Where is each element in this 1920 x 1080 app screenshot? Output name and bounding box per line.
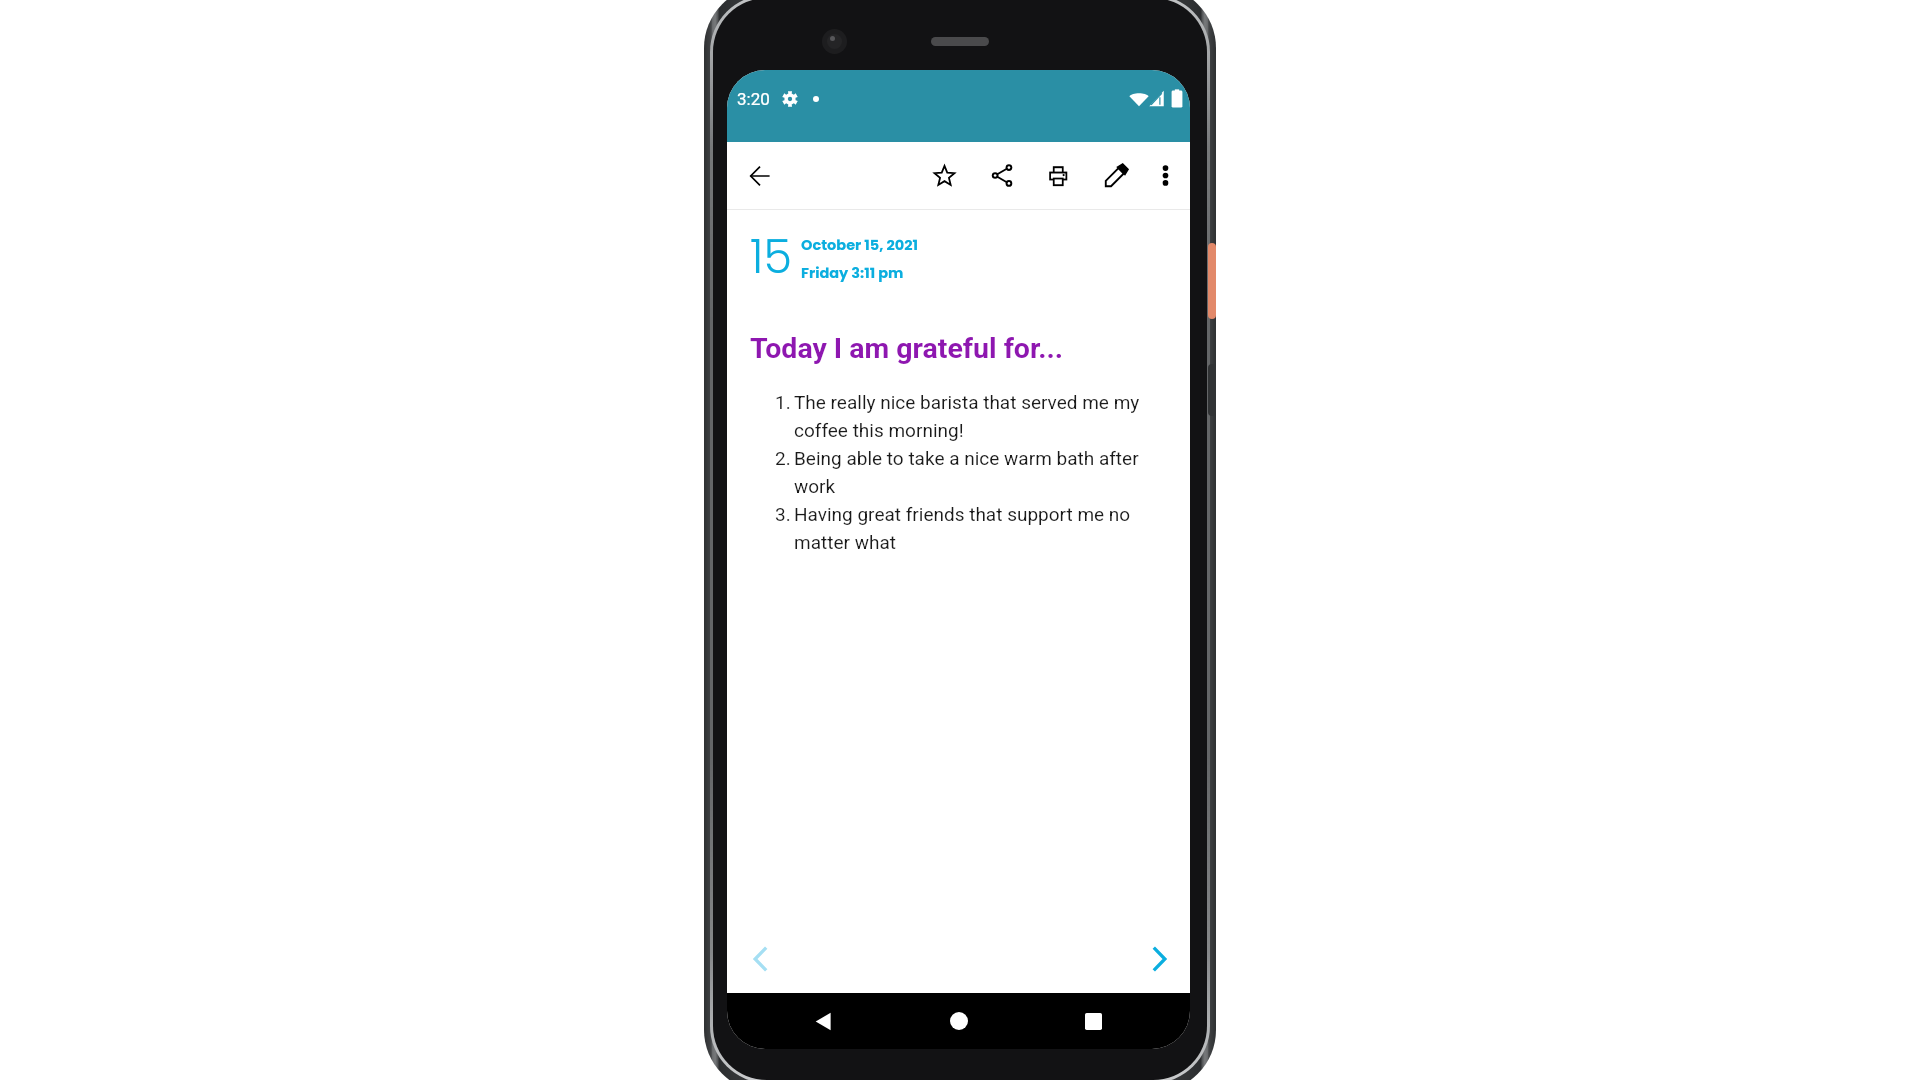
button[interactable]: Back — [799, 993, 847, 1049]
staticText: Being able to take a nice warm bath afte… — [794, 443, 1149, 499]
staticText: October 15, 2021 — [801, 235, 918, 255]
button[interactable]: Favorite — [920, 142, 968, 209]
staticText: 15 — [750, 225, 792, 289]
button[interactable]: Back — [736, 142, 784, 209]
button[interactable]: Recent apps — [1069, 993, 1117, 1049]
button[interactable]: More options — [1141, 142, 1189, 209]
staticText: Having great friends that support me no … — [794, 499, 1149, 555]
button[interactable]: Next entry — [1137, 937, 1181, 981]
staticText: 1. — [775, 387, 794, 415]
staticText: Today I am grateful for... — [750, 332, 1063, 365]
button[interactable]: Share — [978, 142, 1026, 209]
staticText: The really nice barista that served me m… — [794, 387, 1149, 443]
button[interactable]: Print — [1036, 142, 1084, 209]
staticText: Friday 3:11 pm — [801, 263, 904, 283]
staticText: 3. — [775, 499, 794, 527]
button[interactable]: Edit — [1092, 142, 1140, 209]
button[interactable]: Previous entry — [738, 937, 782, 981]
staticText: 2. — [775, 443, 794, 471]
staticText: 3:20 — [737, 89, 770, 109]
button[interactable]: Home — [935, 993, 983, 1049]
